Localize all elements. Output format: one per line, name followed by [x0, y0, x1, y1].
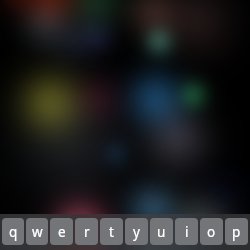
staticText: q: [9, 223, 18, 241]
button[interactable]: t: [100, 218, 123, 245]
staticText: p: [232, 223, 241, 241]
button[interactable]: i: [175, 218, 198, 245]
button[interactable]: o: [200, 218, 223, 245]
button[interactable]: y: [125, 218, 148, 245]
staticText: i: [185, 223, 189, 241]
staticText: u: [157, 223, 166, 241]
button[interactable]: u: [150, 218, 173, 245]
staticText: y: [133, 223, 140, 241]
staticText: t: [109, 223, 114, 241]
button[interactable]: q: [2, 218, 24, 245]
staticText: r: [84, 223, 90, 241]
staticText: o: [207, 223, 216, 241]
staticText: w: [32, 223, 43, 241]
button[interactable]: r: [75, 218, 98, 245]
button[interactable]: e: [50, 218, 73, 245]
button[interactable]: w: [26, 218, 48, 245]
staticText: e: [58, 223, 66, 241]
button[interactable]: p: [225, 218, 248, 245]
